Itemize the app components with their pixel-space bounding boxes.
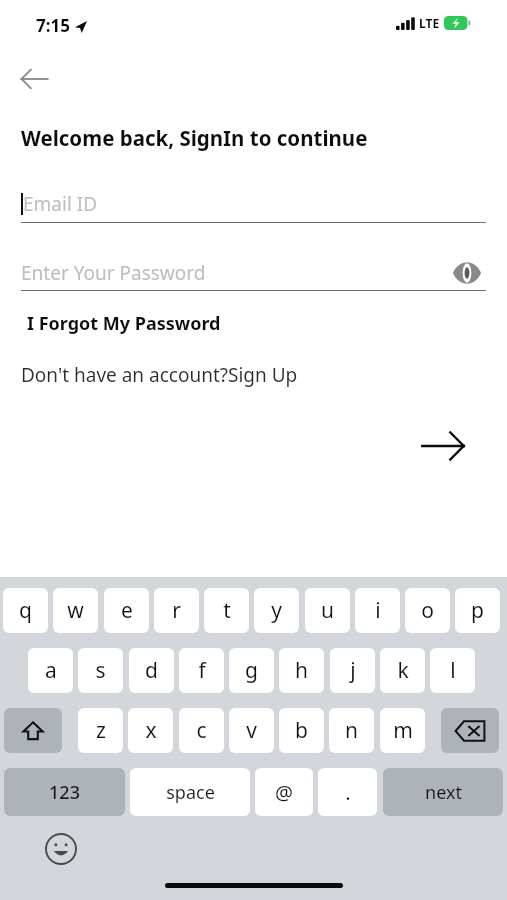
staticText: next (425, 780, 462, 805)
button[interactable]: Show password (448, 256, 486, 290)
button[interactable]: z (78, 708, 123, 753)
staticText: i (375, 596, 381, 625)
staticText: h (295, 656, 308, 685)
staticText: LTE (419, 15, 440, 31)
staticText: @ (275, 779, 293, 806)
button[interactable]: d (129, 648, 174, 693)
staticText: o (421, 596, 434, 625)
button[interactable]: n (329, 708, 374, 753)
button[interactable]: l (430, 648, 475, 693)
button[interactable]: x (128, 708, 173, 753)
button[interactable]: a (28, 648, 73, 693)
button[interactable]: p (455, 588, 500, 633)
button[interactable]: Don't have an account?Sign Up (0, 360, 298, 390)
staticText: f (198, 656, 206, 685)
staticText: w (67, 596, 84, 625)
staticText: a (45, 656, 57, 685)
staticText: d (145, 656, 158, 685)
button[interactable]: next (383, 768, 503, 816)
staticText: Email ID (23, 191, 98, 217)
button[interactable]: i (355, 588, 400, 633)
staticText: b (295, 716, 308, 745)
button[interactable]: j (330, 648, 375, 693)
staticText: g (245, 656, 258, 685)
staticText: j (350, 656, 356, 685)
button[interactable]: I Forgot My Password (0, 309, 221, 338)
staticText: I Forgot My Password (27, 311, 221, 336)
staticText: z (96, 716, 106, 745)
button[interactable]: Email ID (21, 186, 486, 222)
staticText: k (397, 656, 409, 685)
staticText: Welcome back, SignIn to continue (21, 124, 368, 152)
staticText: m (393, 716, 413, 745)
button[interactable]: 123 (4, 768, 125, 816)
staticText: p (471, 596, 484, 625)
staticText: q (19, 596, 32, 625)
button[interactable]: s (78, 648, 123, 693)
staticText: 7:15 (36, 14, 70, 37)
button[interactable]: Continue (417, 420, 469, 472)
staticText: Don't have an account?Sign Up (21, 362, 298, 388)
button[interactable]: Emoji (44, 832, 78, 866)
staticText: s (95, 656, 106, 685)
button[interactable]: . (318, 768, 377, 816)
staticText: c (196, 716, 207, 745)
staticText: . (345, 779, 351, 806)
button[interactable]: w (53, 588, 98, 633)
button[interactable]: f (179, 648, 224, 693)
button[interactable]: Shift (4, 708, 62, 753)
button[interactable]: Enter Your Password (21, 256, 486, 290)
staticText: t (223, 596, 231, 625)
staticText: Enter Your Password (21, 260, 206, 286)
staticText: e (121, 596, 133, 625)
button[interactable]: Back (14, 58, 56, 100)
button[interactable]: r (154, 588, 199, 633)
staticText: r (172, 596, 181, 625)
button[interactable]: c (179, 708, 224, 753)
staticText: 123 (49, 780, 80, 805)
button[interactable]: u (305, 588, 350, 633)
staticText: l (450, 656, 456, 685)
staticText: u (321, 596, 334, 625)
button[interactable]: t (204, 588, 249, 633)
staticText: y (271, 596, 282, 625)
button[interactable]: y (254, 588, 299, 633)
staticText: x (145, 716, 157, 745)
button[interactable]: m (380, 708, 425, 753)
staticText: v (246, 716, 257, 745)
staticText: n (345, 716, 358, 745)
button[interactable]: Backspace (441, 708, 499, 753)
button[interactable]: @ (255, 768, 313, 816)
button[interactable]: space (130, 768, 250, 816)
button[interactable]: e (104, 588, 149, 633)
button[interactable]: o (405, 588, 450, 633)
button[interactable]: g (229, 648, 274, 693)
button[interactable]: b (279, 708, 324, 753)
staticText: space (166, 780, 215, 805)
button[interactable]: h (279, 648, 324, 693)
button[interactable]: v (229, 708, 274, 753)
button[interactable]: k (380, 648, 425, 693)
button[interactable]: q (3, 588, 48, 633)
